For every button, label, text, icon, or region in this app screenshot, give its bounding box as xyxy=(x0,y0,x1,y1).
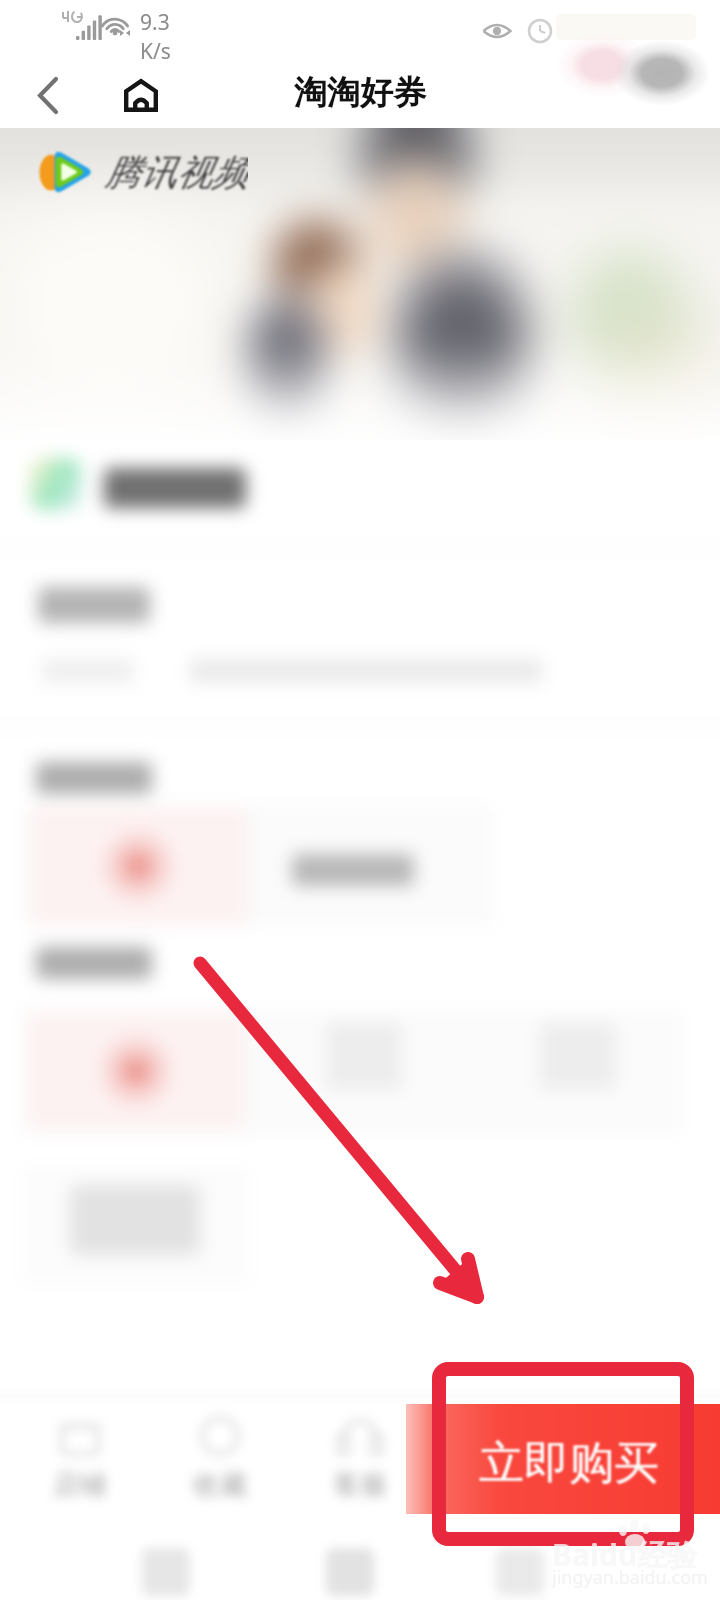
staticText: 腾讯视频 xyxy=(104,150,248,195)
button[interactable]: Home xyxy=(106,62,176,128)
staticText: 店铺 xyxy=(53,1468,107,1502)
button[interactable]: 收藏 xyxy=(164,1410,276,1502)
button[interactable]: 客服 xyxy=(304,1410,416,1502)
button[interactable]: 店铺 xyxy=(24,1410,136,1502)
button[interactable]: Back xyxy=(14,62,82,128)
staticText: Baidu经验 xyxy=(552,1534,698,1575)
staticText: K/s xyxy=(140,37,171,66)
staticText: jingyan.baidu.com xyxy=(552,1565,708,1590)
staticText: 淘淘好券 xyxy=(294,72,426,114)
button[interactable]: Favorite xyxy=(556,32,648,98)
staticText: 立即购买 xyxy=(479,1435,659,1492)
staticText: 客服 xyxy=(333,1468,387,1502)
button[interactable]: 立即购买 xyxy=(406,1404,720,1514)
button[interactable]: Profile xyxy=(614,40,710,106)
staticText: 收藏 xyxy=(193,1468,247,1502)
staticText: 9.3 xyxy=(140,8,170,37)
